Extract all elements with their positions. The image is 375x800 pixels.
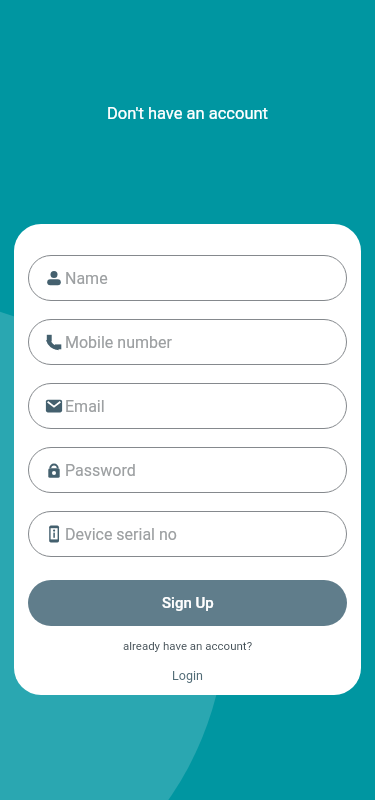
button[interactable]: Login (28, 668, 347, 683)
button[interactable]: Password (28, 447, 347, 493)
staticText: already have an account? (28, 639, 347, 652)
staticText: Password (65, 461, 136, 480)
staticText: Mobile number (65, 333, 172, 352)
button[interactable]: Email (28, 383, 347, 429)
button[interactable]: Mobile number (28, 319, 347, 365)
staticText: Email (65, 397, 105, 416)
button[interactable]: Device serial no (28, 511, 347, 557)
button[interactable]: Name (28, 255, 347, 301)
button[interactable]: Sign Up (28, 580, 347, 626)
staticText: Don't have an account (0, 104, 375, 123)
staticText: Device serial no (65, 525, 177, 544)
staticText: Name (65, 269, 108, 288)
staticText: Sign Up (162, 594, 214, 612)
